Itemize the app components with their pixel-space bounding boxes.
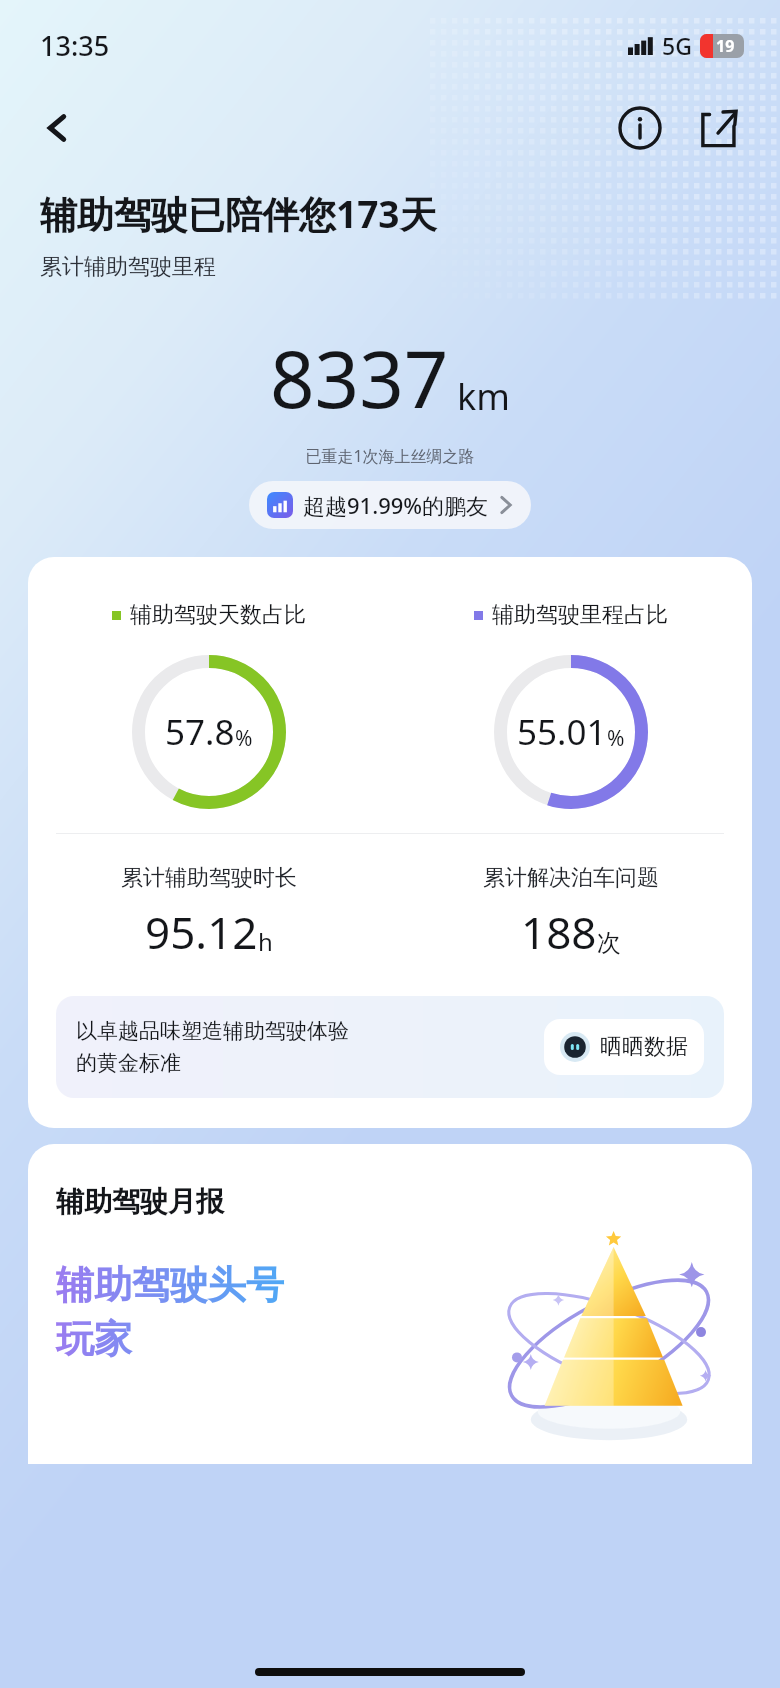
- staticText: 8337: [270, 325, 449, 431]
- staticText: 55.01: [517, 708, 607, 756]
- staticText: %: [607, 724, 625, 753]
- staticText: 次: [597, 928, 621, 958]
- staticText: 188: [521, 902, 597, 962]
- staticText: 19: [716, 35, 735, 57]
- button[interactable]: Share: [688, 98, 748, 158]
- staticText: 13:35: [40, 27, 110, 64]
- staticText: 57.8: [165, 708, 235, 756]
- button[interactable]: Info: [610, 98, 670, 158]
- staticText: 累计辅助驾驶里程: [40, 253, 216, 281]
- staticText: 辅助驾驶月报: [56, 1184, 224, 1219]
- staticText: 的黄金标准: [76, 1050, 181, 1076]
- staticText: 辅助驾驶天数占比: [130, 601, 306, 629]
- staticText: 95.12: [145, 902, 258, 962]
- staticText: 已重走1次海上丝绸之路: [0, 445, 780, 467]
- staticText: 玩家: [56, 1315, 132, 1363]
- staticText: 累计辅助驾驶时长: [121, 864, 297, 892]
- staticText: 5G: [662, 30, 692, 61]
- staticText: km: [457, 372, 510, 421]
- staticText: %: [235, 724, 253, 753]
- staticText: 超越91.99%的鹏友: [303, 490, 489, 520]
- staticText: 辅助驾驶已陪伴您173天: [40, 188, 437, 239]
- button[interactable]: 超越91.99%的鹏友: [249, 481, 531, 529]
- button[interactable]: Back: [30, 100, 86, 156]
- staticText: 辅助驾驶里程占比: [492, 601, 668, 629]
- staticText: h: [258, 925, 273, 958]
- staticText: 以卓越品味塑造辅助驾驶体验: [76, 1018, 349, 1044]
- staticText: 晒晒数据: [600, 1033, 688, 1061]
- button[interactable]: 晒晒数据: [544, 1019, 704, 1075]
- staticText: 累计解决泊车问题: [483, 864, 659, 892]
- staticText: 辅助驾驶头号: [56, 1261, 284, 1309]
